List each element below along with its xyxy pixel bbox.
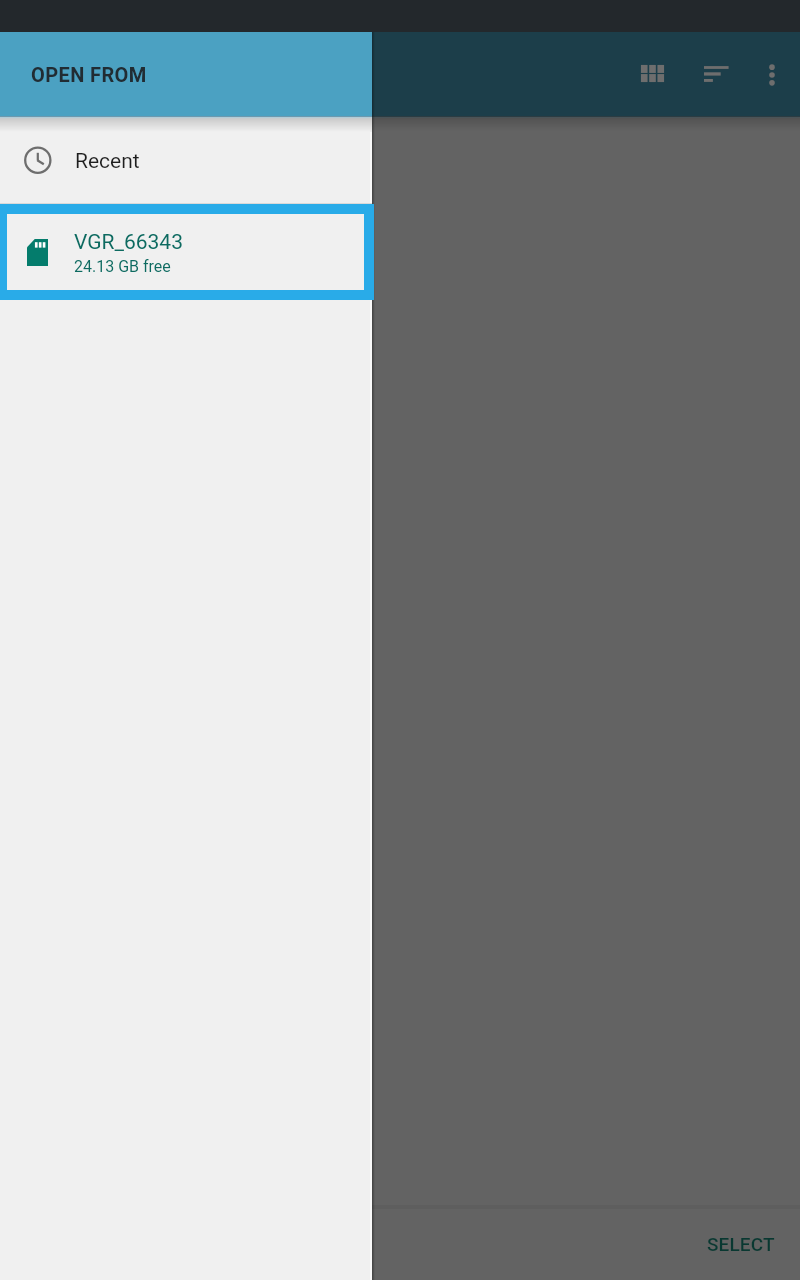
staticText: SELECT <box>707 1233 775 1255</box>
button[interactable]: More options <box>748 51 796 99</box>
button[interactable]: Recent <box>0 116 372 203</box>
button[interactable]: Sort <box>692 50 740 98</box>
staticText: VGR_66343 <box>74 230 183 255</box>
button[interactable]: SELECT <box>691 1222 791 1268</box>
button[interactable]: VGR_66343 <box>0 204 374 300</box>
staticText: OPEN FROM <box>31 63 147 86</box>
staticText: Recent <box>75 149 140 174</box>
staticText: 24.13 GB free <box>74 257 171 276</box>
button[interactable]: Grid view <box>628 49 676 97</box>
